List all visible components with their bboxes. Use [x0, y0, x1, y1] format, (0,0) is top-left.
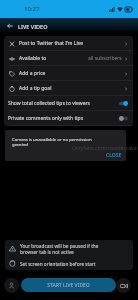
staticText: all subscribers [88, 55, 122, 62]
staticText: 10:27 [24, 5, 40, 13]
button[interactable]: Show total collected tips to viewers [4, 96, 133, 111]
staticText: CLOSE [106, 152, 122, 159]
staticText: Add a tip goal [19, 85, 52, 92]
staticText: Show total collected tips to viewers [8, 100, 91, 107]
button[interactable]: Back [4, 20, 16, 32]
staticText: Post to Twitter that I'm Live [19, 40, 84, 47]
button[interactable]: CLOSE [104, 150, 124, 161]
button[interactable]: Post to Twitter that I'm Live [4, 36, 133, 51]
button[interactable]: START LIVE VIDEO [21, 278, 116, 292]
staticText: LIVE VIDEO [18, 23, 48, 30]
button[interactable]: Add a price [4, 66, 133, 81]
staticText: Onlyfans.com/cookiescake [72, 144, 137, 151]
button[interactable]: Add a tip goal [4, 81, 133, 96]
staticText: START LIVE VIDEO [47, 282, 90, 289]
button[interactable]: Switch camera [116, 278, 131, 293]
staticText: Camera is unavailable or no permission g… [12, 136, 105, 147]
button[interactable]: Account [4, 278, 19, 293]
button[interactable]: Available to [4, 51, 133, 66]
staticText: Your broadcast will be paused if the bro… [20, 243, 108, 255]
staticText: Available to [19, 55, 47, 62]
button[interactable]: Private comments only with tips [4, 111, 133, 126]
staticText: Add a price [19, 70, 46, 77]
staticText: Set screen orientation before start [20, 261, 96, 267]
staticText: Private comments only with tips [8, 115, 84, 122]
